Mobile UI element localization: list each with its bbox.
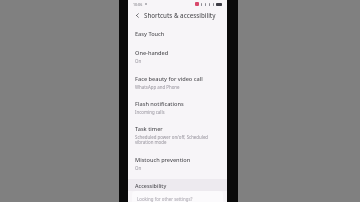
staticText: Mistouch prevention xyxy=(135,156,191,164)
button[interactable]: Task timer xyxy=(128,121,227,150)
staticText: Scheduled power on/off, Scheduled vibrat… xyxy=(135,134,220,146)
staticText: Face beauty for video call xyxy=(135,75,203,83)
staticText: On xyxy=(135,165,142,171)
staticText: Looking for other settings? xyxy=(137,196,193,202)
staticText: Flash notifications xyxy=(135,100,184,108)
button[interactable]: Accessibility xyxy=(128,179,227,191)
staticText: On xyxy=(135,58,142,64)
button[interactable]: Mistouch prevention xyxy=(128,152,227,175)
staticText: WhatsApp and Phone xyxy=(135,84,180,90)
staticText: Shortcuts & accessibility xyxy=(144,11,216,19)
staticText: Easy Touch xyxy=(135,30,165,38)
staticText: One-handed xyxy=(135,49,169,57)
button[interactable]: Easy Touch xyxy=(128,26,227,42)
button[interactable]: Looking for other settings? xyxy=(132,191,223,202)
staticText: Task timer xyxy=(135,125,163,133)
staticText: Accessibility xyxy=(135,182,167,189)
staticText: 10:06 xyxy=(133,2,143,7)
staticText: Incoming calls xyxy=(135,109,165,115)
button[interactable]: Back xyxy=(133,11,142,20)
button[interactable]: Flash notifications xyxy=(128,96,227,119)
button[interactable]: One-handed xyxy=(128,45,227,68)
button[interactable]: Face beauty for video call xyxy=(128,71,227,94)
